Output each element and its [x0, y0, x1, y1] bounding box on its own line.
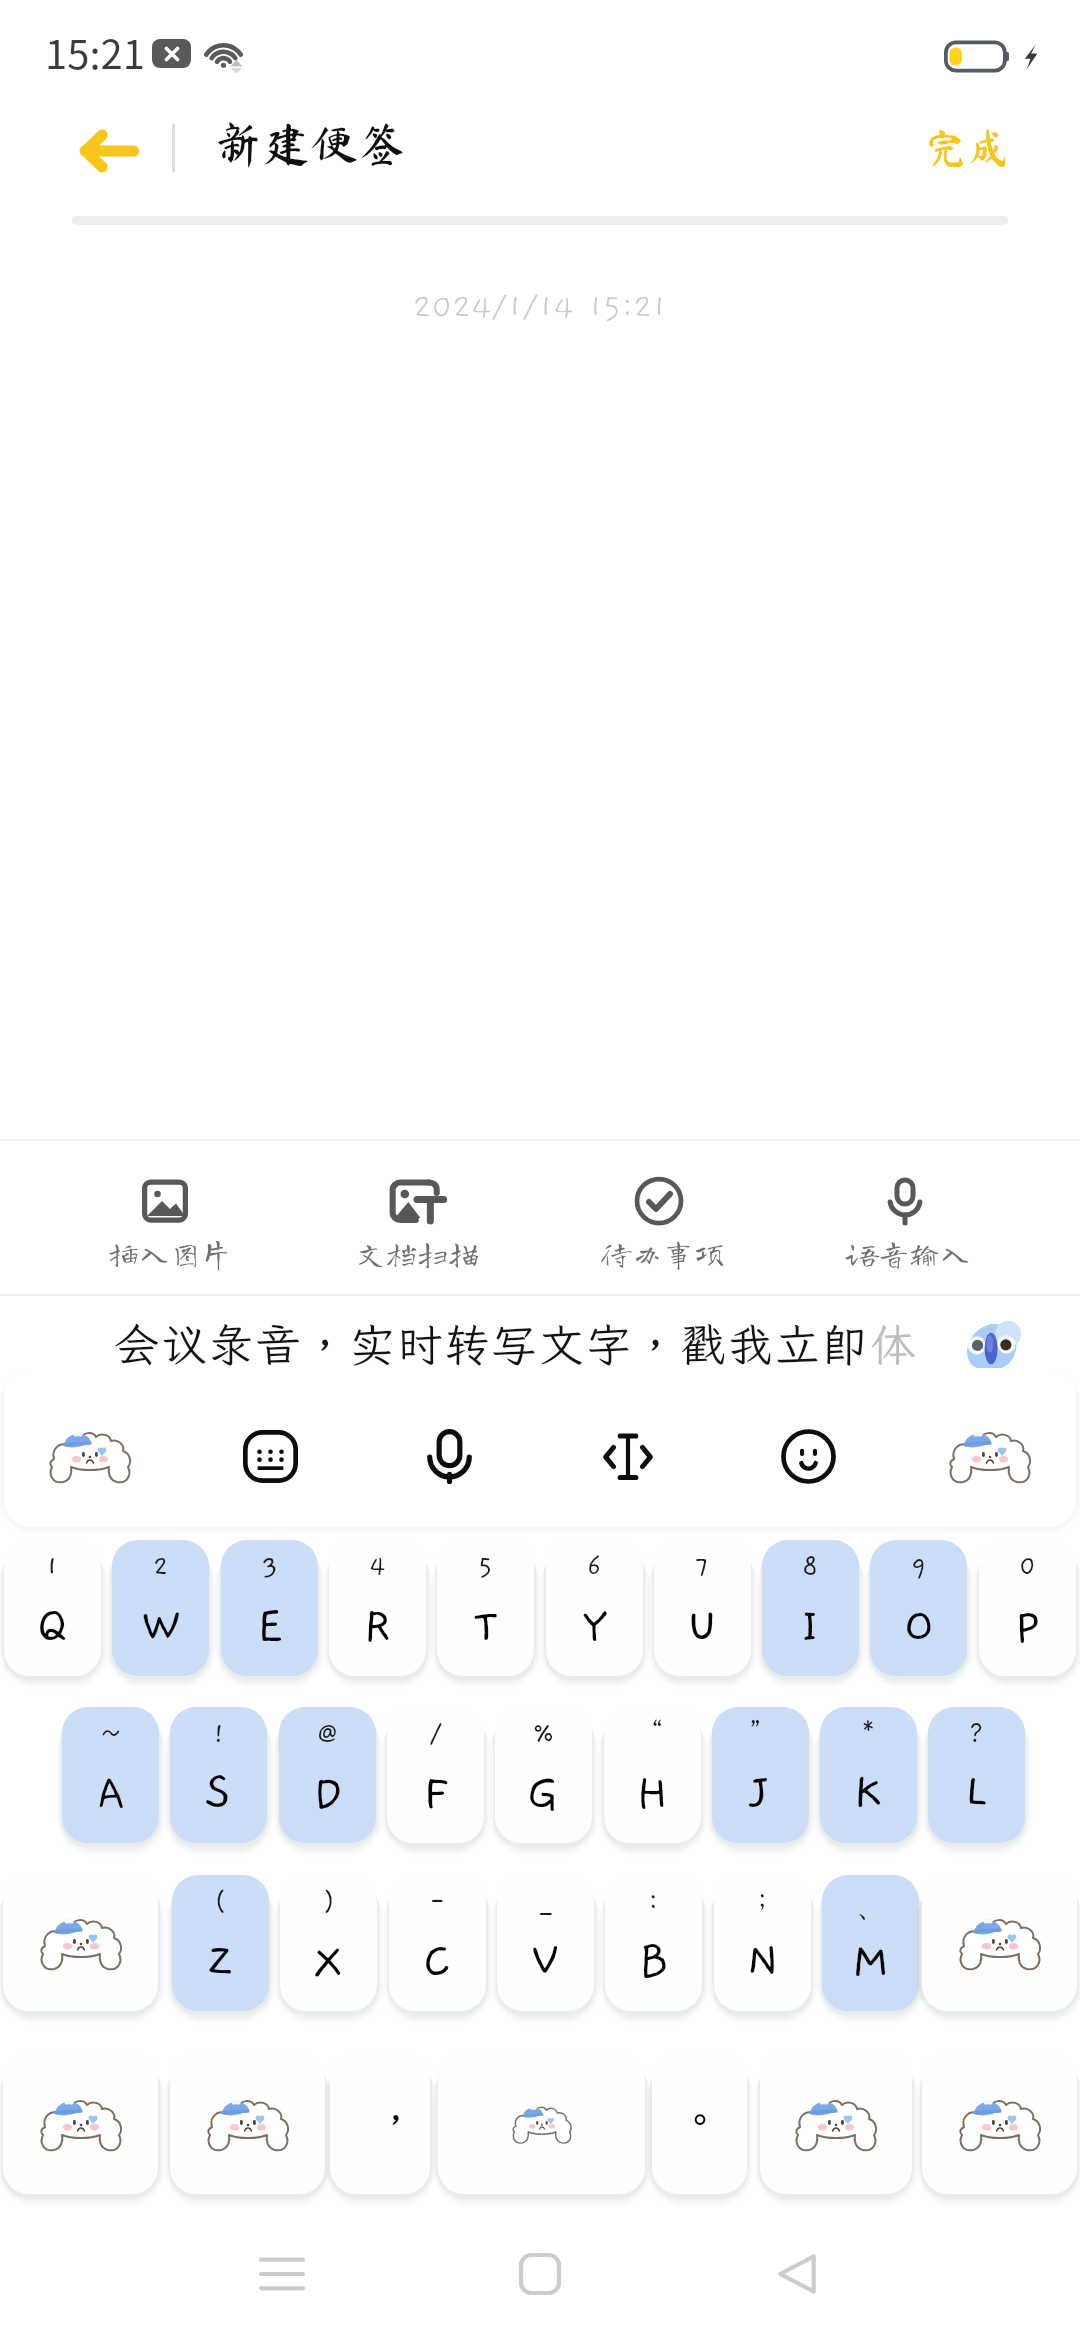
button[interactable]: 。	[652, 2053, 747, 2194]
button[interactable]: 3	[221, 1540, 318, 1676]
staticText: P	[1015, 1600, 1041, 1652]
staticText: M	[852, 1935, 890, 1987]
button[interactable]: ，	[330, 2053, 430, 2194]
button[interactable]: ;	[714, 1875, 811, 2011]
staticText: I	[801, 1600, 820, 1652]
button[interactable]: ~	[62, 1707, 159, 1843]
button[interactable]: *	[820, 1707, 917, 1843]
staticText: 8	[802, 1552, 819, 1582]
button[interactable]: Home	[480, 2214, 600, 2334]
button[interactable]: 5	[437, 1540, 534, 1676]
button[interactable]: ”	[712, 1707, 809, 1843]
staticText: U	[687, 1600, 718, 1652]
button[interactable]: Back	[737, 2214, 857, 2334]
staticText: K	[854, 1767, 883, 1819]
staticText: 体	[870, 1315, 918, 1374]
button[interactable]: Sticker	[44, 1423, 136, 1489]
staticText: 3	[262, 1552, 278, 1582]
button[interactable]: /	[387, 1707, 484, 1843]
button[interactable]: Emoji	[778, 1426, 838, 1486]
button[interactable]: 2	[112, 1540, 209, 1676]
staticText: 完成	[925, 126, 1010, 168]
button[interactable]: “	[604, 1707, 701, 1843]
button[interactable]: 插入图片	[75, 1160, 265, 1285]
button[interactable]: Recents	[222, 2214, 342, 2334]
button[interactable]: 待办事项	[568, 1160, 758, 1285]
button[interactable]: 语音输入	[814, 1160, 1004, 1285]
button[interactable]: :	[605, 1875, 702, 2011]
staticText: ”	[748, 1719, 773, 1749]
button[interactable]: %	[495, 1707, 592, 1843]
staticText: Y	[582, 1600, 608, 1652]
staticText: /	[429, 1719, 443, 1749]
staticText: %	[532, 1719, 555, 1749]
button[interactable]: Cursor move	[598, 1426, 658, 1486]
staticText: T	[473, 1600, 499, 1652]
button[interactable]: 0	[979, 1540, 1076, 1676]
staticText: ~	[99, 1719, 123, 1749]
button[interactable]: 9	[870, 1540, 967, 1676]
button[interactable]: 7	[654, 1540, 751, 1676]
button[interactable]: Voice input	[419, 1426, 479, 1486]
button[interactable]: 8	[762, 1540, 859, 1676]
staticText: G	[527, 1767, 560, 1819]
staticText: O	[904, 1600, 934, 1652]
button[interactable]: (	[172, 1875, 269, 2011]
staticText: B	[639, 1935, 669, 1987]
staticText: ，	[376, 2093, 416, 2146]
staticText: F	[423, 1767, 449, 1819]
button[interactable]: _	[497, 1875, 594, 2011]
staticText: 会议录音，实时转写文字，戳我立即	[114, 1315, 870, 1374]
button[interactable]: Enter	[922, 2053, 1077, 2194]
button[interactable]: 4	[329, 1540, 426, 1676]
staticText: 9	[911, 1552, 927, 1582]
staticText: 2	[153, 1552, 169, 1582]
button[interactable]: !	[170, 1707, 267, 1843]
button[interactable]: ?	[928, 1707, 1025, 1843]
staticText: 新建便签	[214, 120, 407, 168]
staticText: 7	[695, 1552, 710, 1582]
staticText: ?	[968, 1719, 985, 1749]
staticText: 2024/1/14 15:21	[413, 290, 667, 326]
staticText: 1	[46, 1552, 59, 1582]
button[interactable]: Delete	[922, 1875, 1077, 2011]
staticText: D	[313, 1767, 343, 1819]
staticText: H	[636, 1767, 669, 1819]
staticText: 、	[856, 1887, 886, 1925]
button[interactable]: @	[279, 1707, 376, 1843]
staticText: !	[212, 1719, 226, 1749]
button[interactable]: 6	[546, 1540, 643, 1676]
staticText: 。	[680, 2093, 720, 2146]
button[interactable]: Sticker	[944, 1423, 1036, 1489]
button[interactable]: -	[389, 1875, 486, 2011]
button[interactable]: Back	[60, 108, 155, 193]
button[interactable]: )	[280, 1875, 377, 2011]
button[interactable]: 、	[822, 1875, 919, 2011]
staticText: C	[423, 1935, 452, 1987]
staticText: 插入图片	[108, 1238, 232, 1269]
button[interactable]: Language	[170, 2053, 325, 2194]
button[interactable]: Shift	[3, 1875, 158, 2011]
staticText: A	[97, 1767, 125, 1819]
staticText: 6	[587, 1552, 602, 1582]
button[interactable]: Symbols	[3, 2053, 158, 2194]
staticText: 待办事项	[601, 1238, 725, 1269]
button[interactable]: 1	[4, 1540, 101, 1676]
staticText: W	[141, 1600, 181, 1652]
staticText: -	[428, 1887, 447, 1917]
staticText: :	[648, 1887, 659, 1917]
staticText: “	[640, 1719, 665, 1749]
staticText: V	[531, 1935, 560, 1987]
staticText: _	[541, 1887, 551, 1917]
button[interactable]: Emoji key	[760, 2053, 912, 2194]
button[interactable]: 文档扫描	[322, 1160, 512, 1285]
staticText: (	[214, 1887, 228, 1917]
staticText: S	[205, 1767, 232, 1819]
button[interactable]: Keyboard	[240, 1426, 300, 1486]
button[interactable]: Space	[438, 2053, 645, 2194]
staticText: X	[314, 1935, 343, 1987]
staticText: 文档扫描	[355, 1238, 479, 1269]
button[interactable]: 完成	[915, 104, 1020, 189]
staticText: 语音输入	[847, 1238, 971, 1269]
staticText: ;	[757, 1887, 768, 1917]
